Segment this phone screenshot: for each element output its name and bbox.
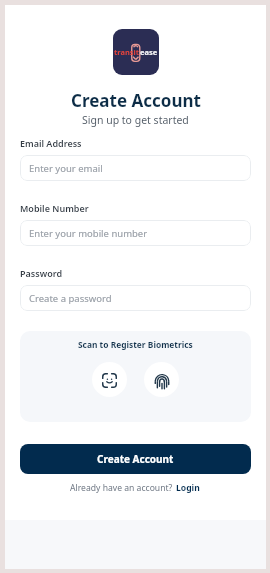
staticText: Password	[20, 267, 63, 279]
button[interactable]: Enter your email	[20, 155, 251, 181]
staticText: ease	[140, 47, 158, 57]
staticText: transit	[114, 47, 140, 57]
button[interactable]: Login	[175, 480, 201, 496]
button[interactable]: Enter your mobile number	[20, 220, 251, 246]
staticText: Already have an account?	[70, 482, 175, 494]
staticText: Scan to Register Biometrics	[78, 339, 193, 350]
staticText: Mobile Number	[20, 202, 89, 214]
button[interactable]: Create a password	[20, 285, 251, 311]
button[interactable]: Scan fingerprint to register	[144, 362, 179, 397]
button[interactable]: Create Account	[20, 444, 251, 474]
staticText: Email Address	[20, 137, 82, 149]
staticText: Create Account	[97, 452, 174, 466]
staticText: Create Account	[71, 89, 201, 112]
staticText: Create a password	[29, 292, 112, 305]
staticText: Login	[176, 482, 200, 494]
staticText: Enter your email	[29, 162, 103, 175]
staticText: Sign up to get started	[82, 113, 189, 127]
staticText: Enter your mobile number	[29, 227, 148, 240]
button[interactable]: Scan face to register	[92, 362, 127, 397]
